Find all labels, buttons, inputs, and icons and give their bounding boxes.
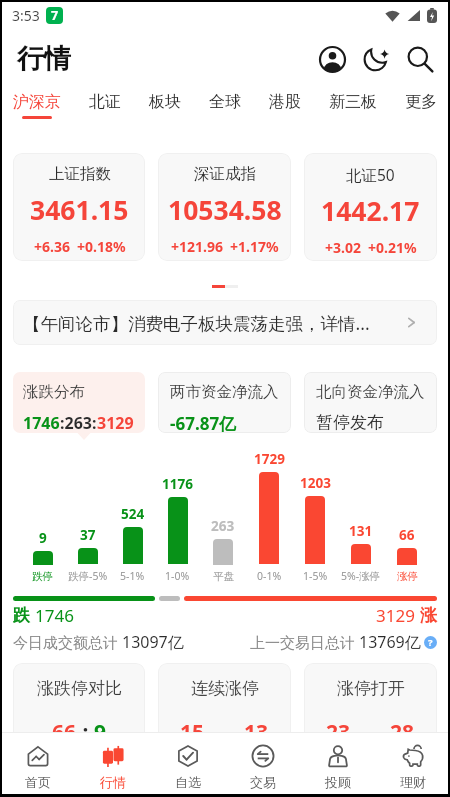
staticText: 上证指数 bbox=[49, 164, 111, 184]
button[interactable]: 港股 bbox=[269, 88, 301, 133]
staticText: 涨停 bbox=[397, 570, 418, 583]
staticText: 5%-涨停 bbox=[341, 569, 381, 583]
staticText: 涨 bbox=[420, 605, 437, 626]
staticText: 今日成交额总计 bbox=[13, 632, 122, 652]
button[interactable]: 涨跌停对比 bbox=[13, 663, 145, 753]
button[interactable]: Profile bbox=[310, 37, 354, 81]
staticText: 13097亿 bbox=[122, 631, 184, 653]
staticText: 13769亿 bbox=[359, 631, 421, 653]
staticText: 1746 bbox=[35, 604, 74, 627]
button[interactable]: Help bbox=[424, 636, 437, 649]
staticText: 行情 bbox=[17, 42, 71, 76]
staticText: 涨停打开 bbox=[337, 678, 405, 699]
staticText: 板块 bbox=[149, 92, 181, 112]
button[interactable]: 更多 bbox=[405, 88, 437, 133]
staticText: 3129 bbox=[97, 412, 134, 433]
staticText: 理财 bbox=[400, 774, 426, 790]
staticText: 上一交易日总计 bbox=[250, 632, 359, 652]
staticText: 涨跌分布 bbox=[23, 382, 85, 402]
staticText: 7 bbox=[51, 7, 59, 24]
staticText: -67.87亿 bbox=[170, 412, 237, 433]
staticText: 跌停 bbox=[32, 570, 53, 583]
button[interactable]: 自选 bbox=[150, 733, 225, 797]
staticText: +1.17% bbox=[230, 237, 279, 256]
staticText: :263: bbox=[60, 412, 97, 433]
button[interactable]: 两市资金净流入 bbox=[158, 372, 291, 433]
staticText: 23 bbox=[326, 718, 351, 747]
button[interactable]: 理财 bbox=[375, 733, 450, 797]
staticText: 524 bbox=[121, 505, 145, 523]
staticText: 1-0% bbox=[165, 569, 190, 583]
button[interactable]: 涨跌分布 bbox=[13, 372, 145, 433]
staticText: 28 bbox=[390, 718, 415, 747]
staticText: 1729 bbox=[254, 450, 285, 468]
staticText: 9 bbox=[39, 529, 47, 547]
staticText: 港股 bbox=[269, 92, 301, 112]
staticText: 3461.15 bbox=[30, 192, 129, 228]
staticText: 263 bbox=[211, 517, 235, 535]
staticText: 深证成指 bbox=[194, 164, 256, 184]
button[interactable]: 【午间论市】消费电子板块震荡走强，详情... bbox=[13, 300, 437, 345]
staticText: 暂停发布 bbox=[316, 412, 384, 433]
staticText: 15 bbox=[180, 718, 205, 747]
button[interactable]: 涨停打开 bbox=[304, 663, 437, 753]
button[interactable]: Dark mode bbox=[354, 37, 398, 81]
staticText: 1442.17 bbox=[321, 193, 420, 229]
staticText: 新三板 bbox=[329, 92, 377, 112]
button[interactable]: 沪深京 bbox=[13, 88, 61, 133]
button[interactable]: 连续涨停 bbox=[158, 663, 291, 753]
button[interactable]: 北证 bbox=[89, 88, 121, 133]
staticText: 两市资金净流入 bbox=[170, 382, 279, 402]
staticText: 10534.58 bbox=[168, 192, 282, 228]
staticText: 全球 bbox=[209, 92, 241, 112]
staticText: 66 bbox=[399, 526, 415, 544]
staticText: +3.02 bbox=[325, 238, 361, 257]
staticText: 3129 bbox=[376, 604, 415, 627]
button[interactable]: 全球 bbox=[209, 88, 241, 133]
button[interactable]: 投顾 bbox=[300, 733, 375, 797]
staticText: 66 bbox=[52, 718, 77, 747]
staticText: 更多 bbox=[405, 92, 437, 112]
staticText: +6.36 bbox=[34, 237, 70, 256]
staticText: +121.96 bbox=[171, 237, 223, 256]
staticText: 首页 bbox=[25, 774, 51, 790]
button[interactable]: 北向资金净流入 bbox=[304, 372, 437, 433]
button[interactable]: 新三板 bbox=[329, 88, 377, 133]
button[interactable]: 上证指数 bbox=[13, 153, 145, 261]
staticText: +0.18% bbox=[77, 237, 126, 256]
staticText: 【午间论市】消费电子板块震荡走强，详情... bbox=[23, 311, 404, 335]
button[interactable]: 行情 bbox=[75, 733, 150, 797]
staticText: 跌 bbox=[13, 605, 30, 626]
button[interactable]: Search bbox=[398, 37, 442, 81]
button[interactable]: 板块 bbox=[149, 88, 181, 133]
staticText: 平盘 bbox=[213, 570, 234, 583]
button[interactable]: 北证50 bbox=[304, 153, 437, 261]
staticText: 5-1% bbox=[120, 569, 145, 583]
staticText: 3:53 bbox=[12, 6, 40, 25]
staticText: 1746 bbox=[23, 412, 60, 433]
staticText: : bbox=[77, 718, 94, 747]
button[interactable]: 交易 bbox=[225, 733, 300, 797]
staticText: 行情 bbox=[100, 774, 126, 790]
staticText: +0.21% bbox=[368, 238, 417, 257]
staticText: 1-5% bbox=[303, 569, 328, 583]
staticText: 投顾 bbox=[325, 774, 351, 790]
staticText: 交易 bbox=[250, 774, 276, 790]
button[interactable]: 首页 bbox=[0, 733, 75, 797]
staticText: 跌停-5% bbox=[68, 569, 108, 583]
staticText: 涨跌停对比 bbox=[37, 678, 122, 699]
staticText: 37 bbox=[80, 526, 96, 544]
staticText: 9 bbox=[94, 718, 107, 747]
staticText: 北向资金净流入 bbox=[316, 382, 425, 402]
staticText: 0-1% bbox=[257, 569, 282, 583]
staticText: 北证50 bbox=[346, 164, 395, 185]
staticText: 连续涨停 bbox=[191, 678, 259, 699]
staticText: 1203 bbox=[300, 474, 331, 492]
staticText: 沪深京 bbox=[13, 92, 61, 112]
button[interactable]: 深证成指 bbox=[158, 153, 291, 261]
staticText: 1176 bbox=[162, 475, 193, 493]
staticText: ? bbox=[428, 636, 433, 649]
staticText: 自选 bbox=[175, 774, 201, 790]
staticText: 北证 bbox=[89, 92, 121, 112]
staticText: 13 bbox=[244, 718, 269, 747]
